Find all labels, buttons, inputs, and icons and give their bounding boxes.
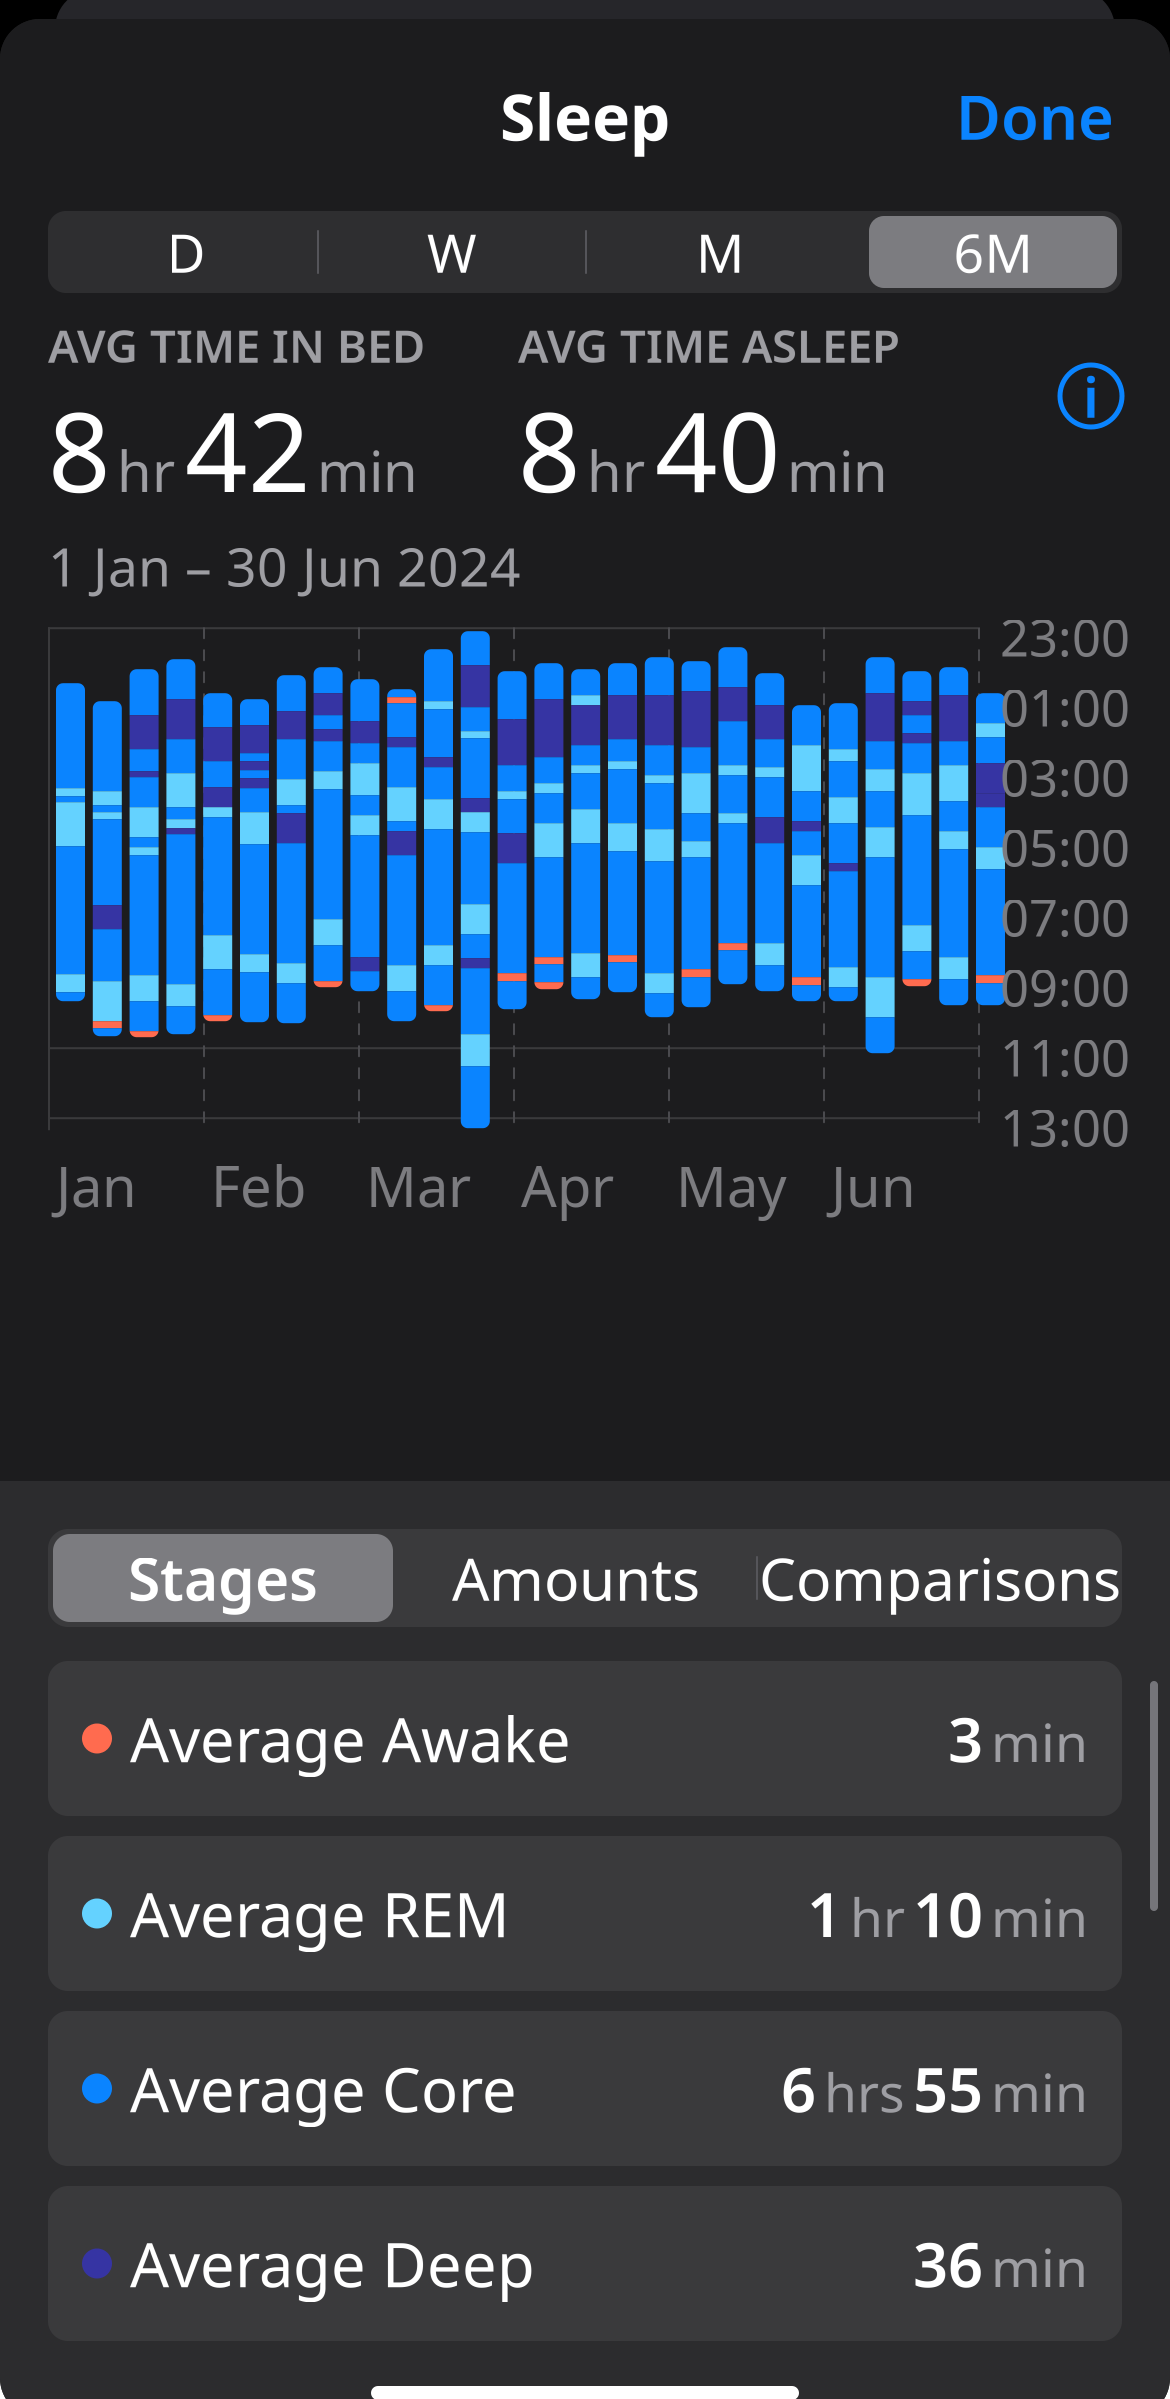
button[interactable]: 6M	[853, 211, 1115, 293]
staticText: 03:00	[1000, 743, 1130, 810]
button[interactable]: Amounts	[396, 1529, 756, 1627]
staticText: 11:00	[1000, 1023, 1130, 1090]
staticText: Average Awake	[130, 1698, 571, 1779]
button[interactable]: Average Deep	[48, 2186, 1122, 2341]
staticText: 10	[913, 1873, 983, 1954]
staticText: 01:00	[1000, 673, 1130, 740]
staticText: 42	[185, 377, 311, 522]
staticText: Apr	[521, 1148, 614, 1223]
staticText: 40	[655, 377, 781, 522]
staticText: Stages	[128, 1539, 318, 1617]
button[interactable]: Average Awake	[48, 1661, 1122, 1816]
button[interactable]: M	[587, 211, 853, 293]
staticText: D	[166, 217, 205, 287]
staticText: min	[991, 2056, 1088, 2127]
staticText: 1 Jan – 30 Jun 2024	[48, 530, 521, 601]
staticText: i	[1083, 359, 1099, 433]
button[interactable]: Average REM	[48, 1836, 1122, 1991]
staticText: AVG TIME ASLEEP	[518, 315, 900, 375]
staticText: 1	[807, 1873, 842, 1954]
staticText: Mar	[366, 1148, 471, 1223]
button[interactable]: Done	[936, 61, 1134, 171]
staticText: min	[991, 2231, 1088, 2302]
staticText: hrs	[824, 2056, 905, 2127]
staticText: 07:00	[1000, 883, 1130, 950]
staticText: min	[317, 433, 418, 508]
staticText: 3	[948, 1698, 983, 1779]
button[interactable]: W	[319, 211, 585, 293]
staticText: 05:00	[1000, 813, 1130, 880]
staticText: Average REM	[130, 1873, 510, 1954]
staticText: Average Deep	[130, 2223, 535, 2304]
button[interactable]: Stages	[53, 1534, 393, 1622]
staticText: 55	[913, 2048, 983, 2129]
staticText: Sleep	[500, 73, 670, 158]
button[interactable]: D	[55, 211, 317, 293]
staticText: 6	[781, 2048, 816, 2129]
staticText: Average Core	[130, 2048, 517, 2129]
staticText: Done	[956, 75, 1114, 157]
staticText: Stages	[127, 1539, 317, 1617]
staticText: 36	[913, 2223, 983, 2304]
staticText: hr	[587, 433, 645, 508]
staticText: 13:00	[1000, 1093, 1130, 1160]
staticText: hr	[850, 1881, 905, 1952]
staticText: 09:00	[1000, 953, 1130, 1020]
button[interactable]: Stages	[48, 1529, 396, 1627]
staticText: Comparisons	[759, 1539, 1121, 1617]
staticText: 8	[48, 377, 111, 522]
staticText: 6M	[944, 217, 1023, 287]
staticText: W	[427, 217, 477, 287]
button[interactable]: 6M	[869, 216, 1117, 288]
staticText: Feb	[211, 1148, 306, 1223]
staticText: hr	[117, 433, 175, 508]
staticText: Jun	[831, 1148, 916, 1223]
staticText: AVG TIME IN BED	[48, 315, 425, 375]
button[interactable]: About sleep data	[1060, 365, 1122, 427]
staticText: min	[991, 1706, 1088, 1777]
button[interactable]: Average Core	[48, 2011, 1122, 2166]
staticText: 23:00	[1000, 603, 1130, 670]
staticText: Amounts	[452, 1539, 700, 1617]
staticText: Jan	[56, 1148, 137, 1223]
staticText: 8	[518, 377, 581, 522]
staticText: 6M	[953, 217, 1032, 287]
staticText: M	[696, 217, 744, 287]
staticText: min	[991, 1881, 1088, 1952]
button[interactable]: Comparisons	[758, 1529, 1122, 1627]
staticText: min	[787, 433, 888, 508]
staticText: May	[676, 1148, 787, 1223]
